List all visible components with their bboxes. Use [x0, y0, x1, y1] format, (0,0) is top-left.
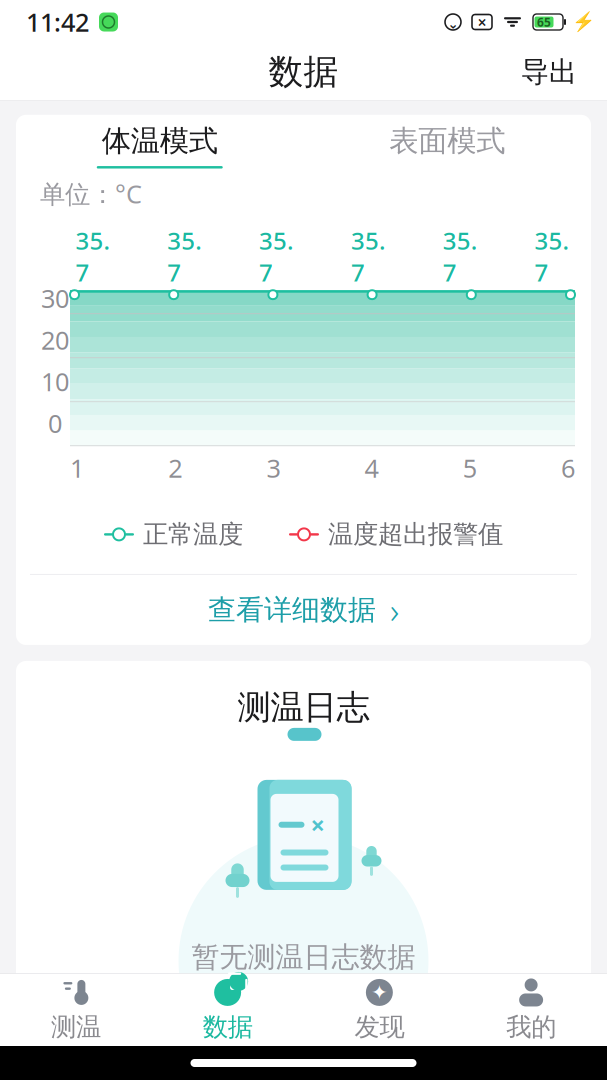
staticText: 1	[70, 451, 84, 485]
staticText: 测温	[51, 1011, 101, 1042]
staticText: ⚡	[571, 11, 594, 33]
button[interactable]: 查看详细数据	[16, 575, 591, 645]
button[interactable]: ✦	[303, 974, 455, 1046]
button[interactable]: 导出	[505, 45, 593, 99]
staticText: 0	[48, 406, 62, 440]
staticText: 20	[41, 323, 69, 357]
staticText: 2	[168, 451, 182, 485]
staticText: ×	[310, 808, 324, 841]
staticText: 表面模式	[389, 123, 505, 159]
staticText: 数据	[268, 51, 338, 93]
staticText: 体温模式	[102, 123, 218, 159]
staticText: 6	[561, 451, 575, 485]
staticText: 数据	[203, 1011, 253, 1042]
staticText: ›	[390, 587, 399, 633]
staticText: ⌄	[447, 16, 458, 31]
staticText: 35.7	[75, 224, 110, 288]
staticText: 35.7	[534, 224, 569, 288]
staticText: 4	[365, 451, 379, 485]
staticText: 导出	[521, 55, 577, 89]
button[interactable]: 数据	[152, 974, 304, 1046]
staticText: 35.7	[443, 224, 478, 288]
button[interactable]: 测温	[0, 974, 152, 1046]
staticText: 我的	[506, 1011, 556, 1042]
button[interactable]: 体温模式	[87, 123, 233, 168]
staticText: 5	[463, 451, 477, 485]
staticText: 65	[537, 14, 551, 30]
button[interactable]: 我的	[455, 974, 607, 1046]
staticText: 暂无测温日志数据	[191, 940, 415, 974]
staticText: 3	[266, 451, 280, 485]
staticText: 温度超出报警值	[328, 519, 503, 550]
staticText: 35.7	[351, 224, 386, 288]
staticText: 正常温度	[143, 519, 243, 550]
staticText: 单位：°C	[40, 177, 142, 210]
staticText: 35.7	[167, 224, 202, 288]
staticText: 11:42	[26, 5, 89, 39]
staticText: 发现	[354, 1011, 404, 1042]
staticText: 30	[41, 281, 69, 315]
staticText: ×	[477, 11, 486, 33]
staticText: 10	[41, 365, 69, 398]
staticText: ✦	[371, 981, 388, 1004]
staticText: 查看详细数据	[208, 593, 376, 627]
staticText: 测温日志	[237, 687, 369, 728]
button[interactable]: 表面模式	[374, 123, 520, 168]
staticText: 35.7	[259, 224, 294, 288]
